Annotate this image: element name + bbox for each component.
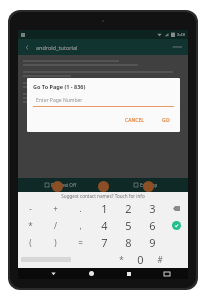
button[interactable]: Hide keyboard	[160, 268, 174, 279]
button[interactable]: =	[68, 234, 92, 251]
staticText: =	[78, 237, 83, 248]
staticText: 7	[101, 235, 108, 250]
button[interactable]: 2	[116, 200, 140, 217]
staticText: Exit App	[140, 182, 158, 188]
staticText: +	[53, 203, 58, 214]
button[interactable]: GO	[158, 115, 174, 126]
button[interactable]: +	[43, 200, 68, 217]
staticText: Suggest contact names? Touch for info	[61, 193, 145, 199]
button[interactable]: (	[18, 234, 43, 251]
button[interactable]: *	[112, 251, 131, 268]
button[interactable]: 4	[92, 217, 116, 234]
button[interactable]: CANCEL	[121, 115, 148, 126]
button[interactable]: Delete	[164, 200, 188, 217]
staticText: GO	[162, 117, 170, 124]
button[interactable]: 7	[92, 234, 116, 251]
button[interactable]: 6	[140, 217, 164, 234]
button[interactable]: 1	[92, 200, 116, 217]
staticText: Request Off	[51, 182, 76, 188]
staticText: #	[157, 254, 163, 265]
staticText: /	[54, 220, 57, 231]
staticText: 3	[149, 201, 156, 216]
staticText: 8	[125, 235, 132, 250]
button[interactable]: 5	[116, 217, 140, 234]
button[interactable]: 3	[140, 200, 164, 217]
button[interactable]: .	[68, 200, 92, 217]
staticText: 3:48	[177, 32, 185, 37]
staticText: 5	[125, 218, 132, 233]
button[interactable]: ,	[68, 217, 92, 234]
button[interactable]: Search	[170, 42, 184, 52]
button[interactable]: *	[18, 217, 43, 234]
button[interactable]: /	[43, 217, 68, 234]
button[interactable]: Back	[22, 42, 32, 52]
staticText: CANCEL	[125, 117, 144, 124]
staticText: 4	[101, 218, 108, 233]
button[interactable]: Action	[143, 181, 154, 192]
staticText: Enter Page Number	[36, 97, 83, 104]
button[interactable]: Home	[84, 268, 98, 279]
staticText: android_tutorial	[36, 44, 78, 51]
staticText: (	[29, 237, 32, 248]
button[interactable]: 8	[116, 234, 140, 251]
button[interactable]: 0	[131, 251, 150, 268]
button[interactable]: Action	[98, 181, 109, 192]
button[interactable]: Recents	[122, 268, 136, 279]
staticText: 6	[149, 218, 156, 233]
staticText: .	[79, 203, 82, 214]
staticText: )	[54, 237, 57, 248]
button[interactable]: Enter	[164, 217, 188, 234]
button[interactable]: Back	[46, 268, 60, 279]
button[interactable]: -	[18, 200, 43, 217]
button[interactable]: Action	[52, 181, 63, 192]
staticText: ,	[79, 220, 82, 231]
staticText: Go To Page (1 - 836)	[33, 83, 86, 90]
button[interactable]: Exit App	[103, 178, 188, 192]
staticText: 2	[125, 201, 132, 216]
staticText: 1	[101, 201, 108, 216]
button[interactable]: Request Off	[18, 178, 102, 192]
staticText: -	[29, 203, 32, 214]
staticText: *	[119, 254, 124, 265]
button[interactable]: Suggest contact names? Touch for info	[18, 192, 188, 200]
button[interactable]: #	[150, 251, 169, 268]
staticText: *	[28, 220, 33, 231]
staticText: 9	[149, 235, 156, 250]
button[interactable]: )	[43, 234, 68, 251]
staticText: 0	[137, 252, 144, 267]
button[interactable]: 9	[140, 234, 164, 251]
